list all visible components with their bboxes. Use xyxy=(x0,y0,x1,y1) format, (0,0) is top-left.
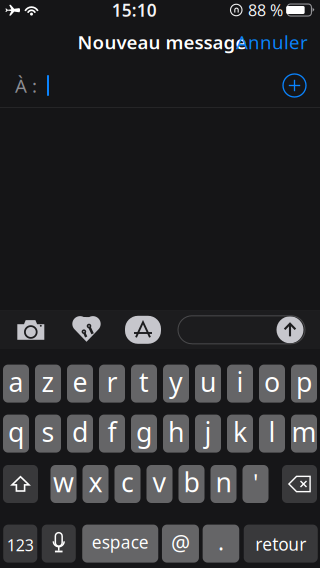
button[interactable]: c xyxy=(114,465,140,503)
button[interactable]: b xyxy=(178,465,204,503)
staticText: v xyxy=(152,464,166,500)
staticText: z xyxy=(41,364,54,399)
button[interactable]: m xyxy=(291,415,317,453)
staticText: k xyxy=(233,414,247,449)
button[interactable]: Majuscule xyxy=(3,465,38,503)
staticText: i xyxy=(236,364,243,399)
button[interactable]: d xyxy=(67,415,93,453)
button[interactable]: @ xyxy=(162,525,199,563)
staticText: 88 % xyxy=(248,0,283,21)
staticText: 15:10 xyxy=(112,0,157,21)
staticText: espace xyxy=(92,531,149,554)
button[interactable]: x xyxy=(82,465,108,503)
button[interactable]: Dictée xyxy=(42,525,76,563)
staticText: retour xyxy=(255,533,306,556)
staticText: t xyxy=(139,364,149,399)
button[interactable]: a xyxy=(3,365,29,403)
button[interactable]: Ajouter un contact xyxy=(278,69,311,102)
button[interactable]: y xyxy=(163,365,189,403)
staticText: h xyxy=(168,414,184,449)
staticText: w xyxy=(53,464,74,500)
staticText: @ xyxy=(171,528,190,557)
button[interactable]: z xyxy=(35,365,61,403)
staticText: ' xyxy=(253,466,258,498)
staticText: n xyxy=(215,464,231,500)
staticText: l xyxy=(268,414,275,449)
button[interactable]: Appareil photo xyxy=(13,314,49,346)
staticText: u xyxy=(200,364,216,399)
button[interactable]: t xyxy=(131,365,157,403)
button[interactable]: n xyxy=(210,465,236,503)
button[interactable]: o xyxy=(259,365,285,403)
button[interactable]: h xyxy=(163,415,189,453)
button[interactable]: ' xyxy=(242,465,268,503)
staticText: c xyxy=(121,464,134,500)
button[interactable]: p xyxy=(291,365,317,403)
button[interactable]: j xyxy=(195,415,221,453)
staticText: d xyxy=(72,414,88,449)
button[interactable]: v xyxy=(146,465,172,503)
button[interactable]: q xyxy=(3,415,29,453)
staticText: . xyxy=(218,526,224,557)
staticText: m xyxy=(291,414,316,449)
staticText: À : xyxy=(15,73,37,98)
button[interactable]: 123 xyxy=(3,525,37,563)
staticText: Annuler xyxy=(236,30,308,54)
button[interactable]: App Store xyxy=(122,313,164,347)
button[interactable]: k xyxy=(227,415,253,453)
button[interactable]: f xyxy=(99,415,125,453)
staticText: q xyxy=(8,414,24,449)
button[interactable]: Annuler xyxy=(229,22,315,62)
button[interactable]: i xyxy=(227,365,253,403)
staticText: y xyxy=(169,364,183,399)
staticText: a xyxy=(8,364,23,399)
button[interactable]: l xyxy=(259,415,285,453)
button[interactable]: e xyxy=(67,365,93,403)
button[interactable]: r xyxy=(99,365,125,403)
button[interactable]: Envoyer xyxy=(178,316,305,344)
staticText: b xyxy=(183,464,199,500)
staticText: e xyxy=(72,364,87,399)
staticText: g xyxy=(136,414,152,449)
button[interactable]: . xyxy=(203,525,239,563)
staticText: j xyxy=(204,414,211,449)
staticText: s xyxy=(41,414,54,449)
button[interactable]: espace xyxy=(82,525,158,563)
button[interactable]: Digital Touch xyxy=(68,313,105,347)
button[interactable]: Supprimer xyxy=(282,465,317,503)
button[interactable]: w xyxy=(50,465,76,503)
staticText: 123 xyxy=(7,534,34,556)
staticText: p xyxy=(296,364,312,399)
staticText: o xyxy=(264,364,280,399)
button[interactable]: g xyxy=(131,415,157,453)
button[interactable]: s xyxy=(35,415,61,453)
staticText: x xyxy=(88,464,102,500)
staticText: Nouveau message xyxy=(77,30,246,54)
button[interactable]: retour xyxy=(244,525,318,563)
staticText: f xyxy=(107,414,116,449)
button[interactable]: u xyxy=(195,365,221,403)
staticText: r xyxy=(106,364,117,399)
